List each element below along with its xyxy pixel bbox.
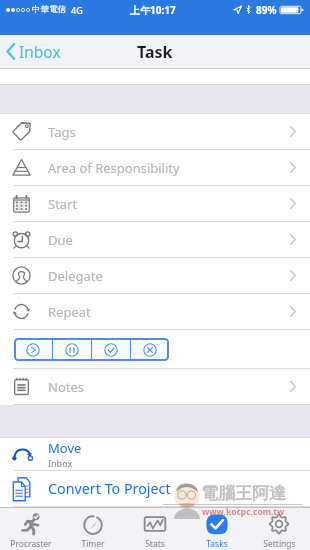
- staticText: Delegate: [48, 267, 103, 285]
- staticText: 電腦王阿達: [201, 483, 286, 504]
- button[interactable]: Procraster: [0, 508, 62, 550]
- staticText: 上午10:17: [130, 3, 176, 17]
- staticText: Notes: [48, 378, 84, 396]
- button[interactable]: segment: [53, 338, 91, 361]
- staticText: Inbox: [19, 41, 61, 62]
- staticText: Timer: [81, 538, 105, 550]
- button[interactable]: segment: [14, 338, 52, 361]
- button[interactable]: Notes: [0, 369, 310, 405]
- staticText: 89%: [256, 3, 277, 17]
- button[interactable]: Start: [0, 186, 310, 222]
- button[interactable]: Tags: [0, 114, 310, 150]
- staticText: Tags: [48, 123, 76, 141]
- staticText: Repeat: [48, 303, 91, 321]
- button[interactable]: segment: [92, 338, 130, 361]
- button[interactable]: Inbox: [6, 35, 61, 68]
- button[interactable]: segment: [131, 338, 169, 361]
- staticText: Due: [48, 231, 73, 249]
- button[interactable]: Due: [0, 222, 310, 258]
- staticText: Tasks: [206, 538, 228, 550]
- button[interactable]: Settings: [248, 508, 310, 550]
- button[interactable]: Area of Responsibility: [0, 150, 310, 186]
- button[interactable]: Delegate: [0, 258, 310, 294]
- staticText: www.kocpc.com.tw: [202, 506, 285, 518]
- staticText: 中華電信: [32, 4, 66, 15]
- button[interactable]: Tasks: [186, 508, 248, 550]
- staticText: Settings: [263, 538, 296, 550]
- button[interactable]: Repeat: [0, 294, 310, 330]
- staticText: 4G: [71, 4, 83, 16]
- staticText: Inbox: [48, 457, 73, 469]
- staticText: Procraster: [10, 538, 52, 550]
- staticText: Task: [137, 41, 173, 63]
- staticText: Convert To Project: [48, 479, 171, 498]
- staticText: Move: [48, 439, 82, 457]
- button[interactable]: Timer: [62, 508, 124, 550]
- staticText: Stats: [145, 538, 165, 550]
- button[interactable]: Convert To Project: [0, 471, 310, 507]
- staticText: Area of Responsibility: [48, 159, 180, 177]
- button[interactable]: Stats: [124, 508, 186, 550]
- staticText: Start: [48, 195, 78, 213]
- button[interactable]: Move: [0, 438, 310, 471]
